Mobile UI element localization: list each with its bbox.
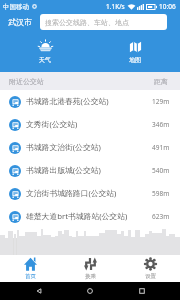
staticText: 距离 — [154, 77, 168, 86]
staticText: 书城路文治街(公交站) — [26, 142, 152, 153]
button[interactable]: 换乘 — [60, 255, 120, 282]
staticText: 书城路出版城(公交站) — [26, 165, 152, 176]
staticText: 129m — [152, 97, 170, 106]
staticText: 346m — [152, 120, 170, 129]
button[interactable]: 武汉市 — [0, 13, 40, 31]
staticText: 换乘 — [85, 273, 96, 280]
button[interactable]: 设置 — [120, 255, 180, 282]
staticText: 文秀街(公交站) — [26, 119, 152, 130]
button[interactable]: 文治街书城路路口(公交站) — [0, 182, 180, 205]
button[interactable]: 书城路出版城(公交站) — [0, 159, 180, 182]
staticText: 文治街书城路路口(公交站) — [26, 188, 152, 199]
staticText: 设置 — [145, 273, 156, 280]
button[interactable]: 文秀街(公交站) — [0, 113, 180, 136]
button[interactable]: 书城路北港春苑(公交站) — [0, 90, 180, 113]
staticText: 搜索公交线路、车站、地点 — [45, 18, 129, 27]
staticText: 首页 — [25, 273, 36, 280]
button[interactable]: 天气 — [0, 31, 90, 72]
staticText: 武汉市 — [8, 17, 32, 27]
button[interactable]: 雄楚大道brt书城路站(公交站) — [0, 205, 180, 228]
staticText: 491m — [152, 143, 170, 152]
staticText: 1.1K/s — [106, 2, 125, 11]
button[interactable]: Home — [77, 282, 103, 300]
staticText: 地图 — [129, 56, 141, 64]
staticText: 10:06 — [159, 2, 176, 11]
staticText: 书城路北港春苑(公交站) — [26, 96, 152, 107]
staticText: 雄楚大道brt书城路站(公交站) — [26, 211, 152, 222]
button[interactable]: 书城路文治街(公交站) — [0, 136, 180, 159]
button[interactable]: Back — [26, 282, 52, 300]
staticText: 598m — [152, 189, 170, 198]
button[interactable]: 首页 — [0, 255, 60, 282]
button[interactable]: 地图 — [90, 31, 180, 72]
button[interactable]: Recent apps — [129, 282, 155, 300]
staticText: 附近公交站 — [9, 77, 44, 86]
staticText: 中国移动 — [3, 3, 29, 11]
staticText: 天气 — [39, 56, 51, 64]
staticText: 540m — [152, 166, 170, 175]
staticText: 623m — [152, 212, 170, 221]
button[interactable]: 搜索公交线路、车站、地点 — [40, 14, 167, 30]
